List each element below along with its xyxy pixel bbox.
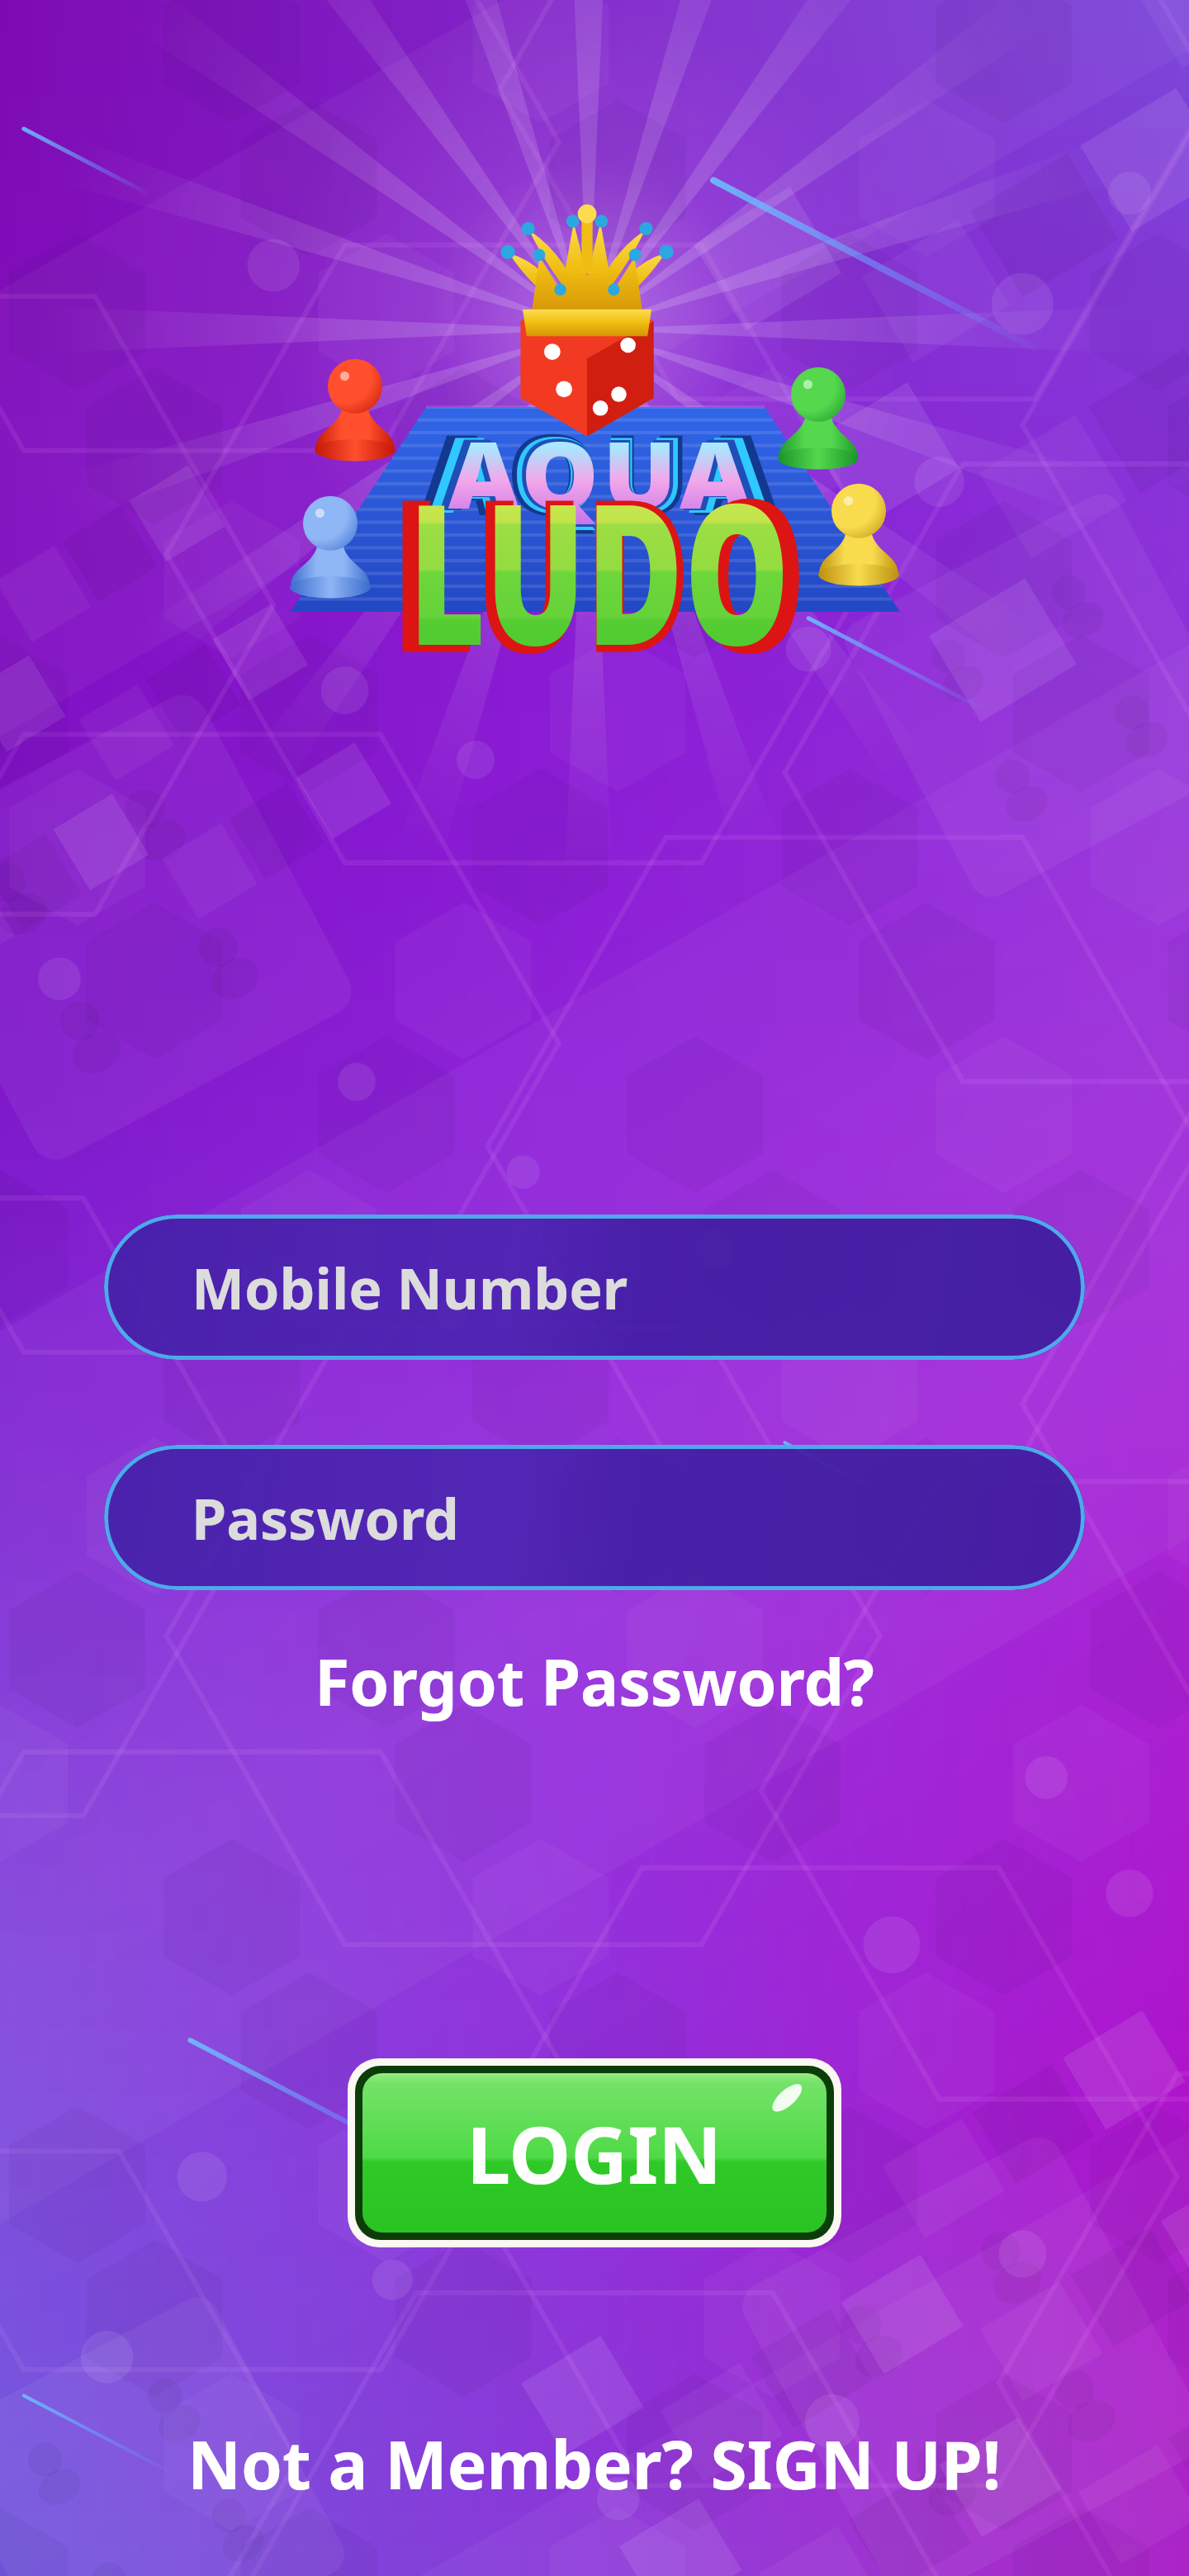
staticText: Mobile Number xyxy=(192,1249,628,1326)
staticText: AQUA xyxy=(430,401,773,544)
button[interactable]: LOGIN xyxy=(348,2058,841,2247)
staticText: Not a Member? SIGN UP! xyxy=(187,2418,1002,2508)
staticText: AQUA xyxy=(448,409,755,535)
staticText: LOGIN xyxy=(467,2100,722,2206)
staticText: Forgot Password? xyxy=(315,1638,874,1725)
staticText: LUDO xyxy=(391,425,808,714)
button[interactable]: Password xyxy=(104,1445,1085,1590)
staticText: AQUA xyxy=(420,397,783,548)
staticText: Password xyxy=(192,1480,459,1556)
staticText: AQUA xyxy=(440,406,763,539)
button[interactable]: Mobile Number xyxy=(104,1215,1085,1360)
button[interactable]: Forgot Password? xyxy=(290,1627,899,1736)
button[interactable]: Not a Member? SIGN UP! xyxy=(168,2408,1021,2518)
staticText: LUDO xyxy=(409,438,791,702)
